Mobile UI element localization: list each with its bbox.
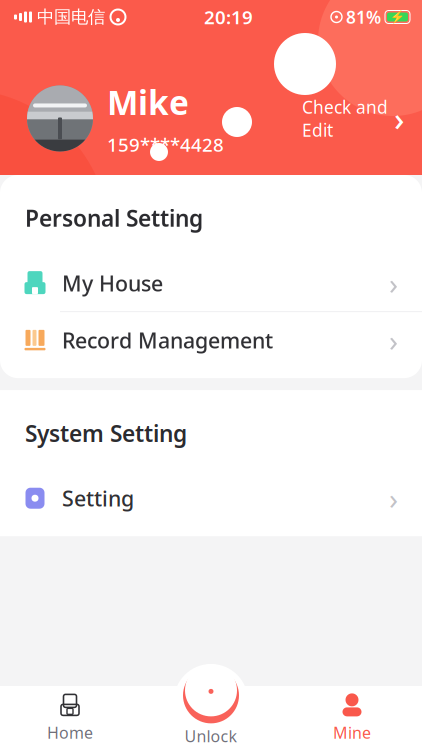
staticText: › [389, 321, 398, 360]
button[interactable]: Unlock [140, 664, 282, 750]
staticText: › [394, 97, 404, 140]
staticText: › [389, 479, 398, 518]
staticText: Home [47, 722, 93, 743]
button[interactable]: Home [0, 686, 140, 750]
staticText: Check and Edit [302, 95, 388, 141]
staticText: Personal Setting [25, 203, 203, 233]
staticText: ⚡ [390, 10, 405, 24]
staticText: Setting [62, 484, 134, 512]
button[interactable]: Check and Edit [296, 87, 410, 149]
button[interactable]: Record Management [0, 312, 422, 368]
staticText: 中国电信 [37, 6, 105, 28]
staticText: 20:19 [204, 5, 253, 29]
staticText: 81% [346, 5, 381, 28]
staticText: Mine [333, 722, 371, 743]
staticText: Record Management [62, 326, 273, 354]
staticText: My House [62, 269, 163, 297]
staticText: › [389, 264, 398, 303]
staticText: 159****4428 [107, 132, 224, 157]
staticText: Unlock [184, 725, 237, 747]
staticText: System Setting [25, 418, 187, 448]
button[interactable]: Mine [282, 686, 422, 750]
button[interactable]: Setting [0, 470, 422, 526]
button[interactable]: My House [0, 255, 422, 311]
staticText: Mike [107, 80, 189, 124]
